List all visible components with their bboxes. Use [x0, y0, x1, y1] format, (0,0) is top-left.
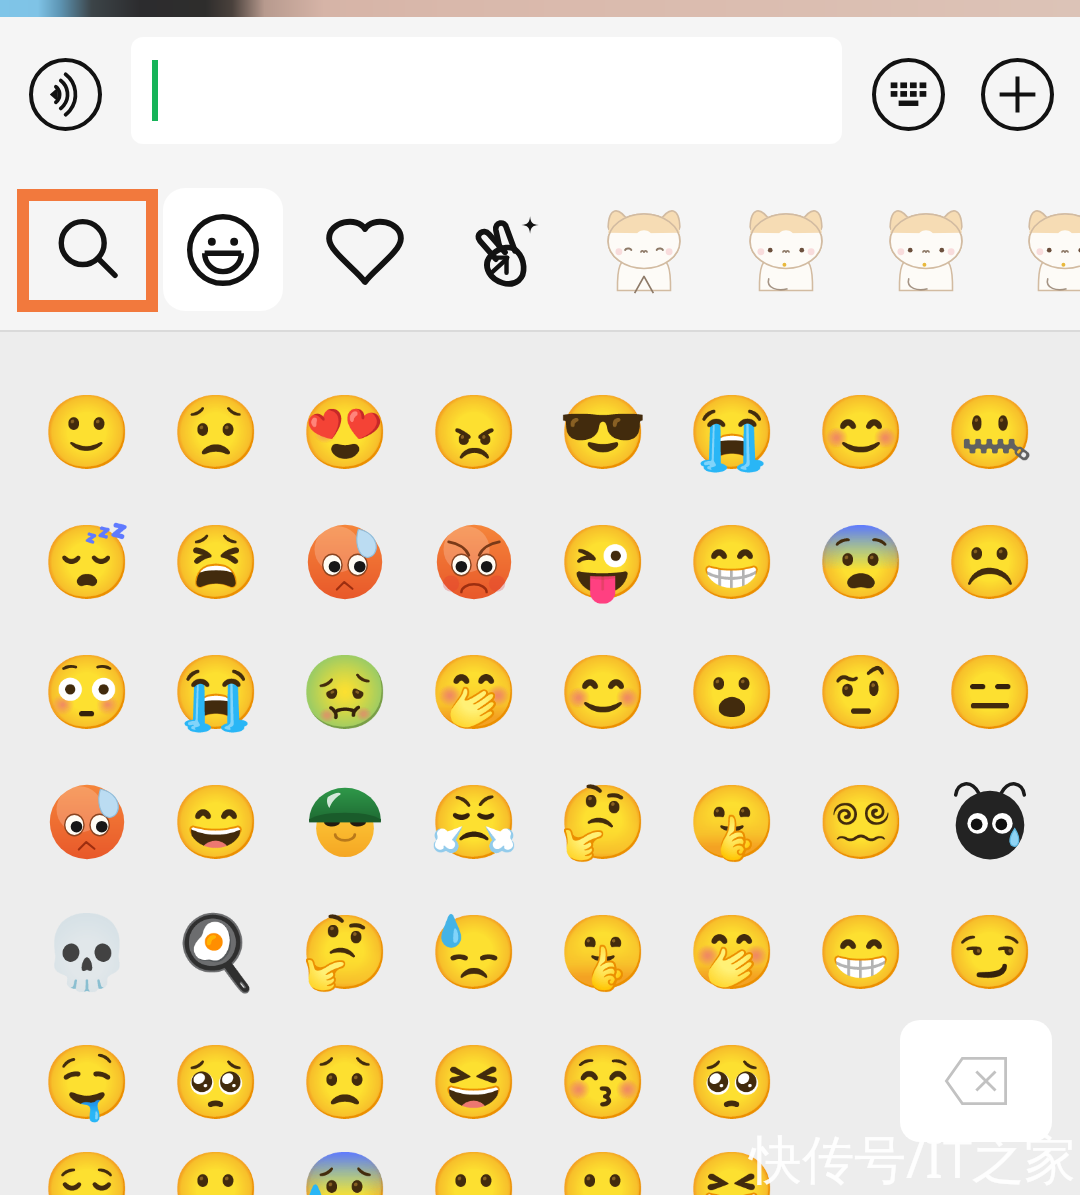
- button[interactable]: Emoji 45: [538, 1017, 667, 1147]
- staticText: 😜: [558, 520, 648, 605]
- staticText: 😏: [945, 910, 1035, 995]
- button[interactable]: Emoji 13: [538, 497, 667, 627]
- staticText: 🙂: [42, 390, 132, 475]
- button[interactable]: Emoji 27: [280, 757, 409, 887]
- button[interactable]: Sticker pack: [445, 188, 565, 311]
- staticText: 😳: [42, 650, 132, 735]
- button[interactable]: Emoji: [163, 188, 283, 311]
- button[interactable]: Emoji 9: [22, 497, 151, 627]
- button[interactable]: Emoji 34: [151, 887, 280, 1017]
- staticText: 🤔: [300, 910, 390, 995]
- staticText: 😑: [945, 650, 1035, 735]
- button[interactable]: Emoji 3: [280, 367, 409, 497]
- button[interactable]: Emoji 31: [796, 757, 925, 887]
- staticText: 😍: [300, 390, 390, 475]
- staticText: 😟: [300, 1040, 390, 1125]
- button[interactable]: Emoji 52: [409, 1147, 538, 1195]
- staticText: 🤢: [300, 650, 390, 735]
- button[interactable]: Emoji 35: [280, 887, 409, 1017]
- button[interactable]: Emoji 18: [151, 627, 280, 757]
- button[interactable]: Emoji 19: [280, 627, 409, 757]
- staticText: 🥺: [171, 1040, 261, 1125]
- button[interactable]: Emoji 2: [151, 367, 280, 497]
- button[interactable]: Emoji 39: [796, 887, 925, 1017]
- button[interactable]: Search stickers: [29, 201, 146, 300]
- button[interactable]: Emoji 1: [22, 367, 151, 497]
- button[interactable]: Emoji 38: [667, 887, 796, 1017]
- button[interactable]: Emoji 36: [409, 887, 538, 1017]
- button[interactable]: Emoji 53: [538, 1147, 667, 1195]
- button[interactable]: Emoji 11: [280, 497, 409, 627]
- staticText: 快传号/IT之家: [750, 1122, 1076, 1193]
- button[interactable]: Voice input: [24, 53, 106, 135]
- staticText: 😆: [429, 1040, 519, 1125]
- button[interactable]: Message input field: [131, 37, 842, 144]
- button[interactable]: Emoji 22: [667, 627, 796, 757]
- button[interactable]: Emoji 49: [22, 1147, 151, 1195]
- staticText: 😭: [171, 650, 261, 735]
- button[interactable]: Emoji 41: [22, 1017, 151, 1147]
- staticText: 😮: [687, 650, 777, 735]
- button[interactable]: Sticker pack 5: [1004, 188, 1080, 311]
- button[interactable]: Emoji 10: [151, 497, 280, 627]
- button[interactable]: Favorites: [305, 188, 425, 311]
- button[interactable]: Emoji 24: [925, 627, 1054, 757]
- button[interactable]: Emoji 54: [667, 1147, 796, 1195]
- staticText: 😵‍💫: [816, 780, 906, 865]
- staticText: 🙂: [171, 1147, 261, 1195]
- staticText: 😊: [558, 650, 648, 735]
- button[interactable]: Emoji 51: [280, 1147, 409, 1195]
- button[interactable]: Emoji 37: [538, 887, 667, 1017]
- button[interactable]: Emoji 32: [925, 757, 1054, 887]
- button[interactable]: Emoji 43: [280, 1017, 409, 1147]
- staticText: 😟: [171, 390, 261, 475]
- button[interactable]: Emoji 30: [667, 757, 796, 887]
- staticText: 😠: [429, 390, 519, 475]
- button[interactable]: Emoji 20: [409, 627, 538, 757]
- staticText: 🙂: [429, 1147, 519, 1195]
- button[interactable]: Emoji 16: [925, 497, 1054, 627]
- staticText: 🤤: [42, 1040, 132, 1125]
- staticText: 🤔: [558, 780, 648, 865]
- staticText: 🥺: [687, 1040, 777, 1125]
- button[interactable]: Emoji 46: [667, 1017, 796, 1147]
- button[interactable]: Emoji 12: [409, 497, 538, 627]
- button[interactable]: Emoji 4: [409, 367, 538, 497]
- staticText: 😁: [687, 520, 777, 605]
- staticText: 😄: [171, 780, 261, 865]
- button[interactable]: Sticker pack 3: [725, 188, 847, 311]
- staticText: 💀: [42, 910, 132, 995]
- button[interactable]: Emoji 15: [796, 497, 925, 627]
- staticText: 😁: [816, 910, 906, 995]
- button[interactable]: Keyboard: [867, 53, 949, 135]
- button[interactable]: Emoji 17: [22, 627, 151, 757]
- staticText: 😭: [687, 390, 777, 475]
- button[interactable]: Emoji 25: [22, 757, 151, 887]
- button[interactable]: Emoji 6: [667, 367, 796, 497]
- button[interactable]: Emoji 21: [538, 627, 667, 757]
- button[interactable]: Emoji 28: [409, 757, 538, 887]
- button[interactable]: Emoji 44: [409, 1017, 538, 1147]
- button[interactable]: Emoji 29: [538, 757, 667, 887]
- staticText: 😌: [42, 1147, 132, 1195]
- staticText: 😨: [816, 520, 906, 605]
- staticText: 😰: [300, 1147, 390, 1195]
- button[interactable]: Emoji 42: [151, 1017, 280, 1147]
- staticText: 🤫: [687, 780, 777, 865]
- button[interactable]: More: [976, 53, 1058, 135]
- button[interactable]: Emoji 7: [796, 367, 925, 497]
- staticText: 😎: [558, 390, 648, 475]
- button[interactable]: Emoji 5: [538, 367, 667, 497]
- staticText: 🙂: [558, 1147, 648, 1195]
- button[interactable]: Emoji 23: [796, 627, 925, 757]
- button[interactable]: Sticker pack 4: [865, 188, 987, 311]
- button[interactable]: Emoji 50: [151, 1147, 280, 1195]
- button[interactable]: Emoji 40: [925, 887, 1054, 1017]
- button[interactable]: Delete: [900, 1020, 1052, 1142]
- button[interactable]: Emoji 33: [22, 887, 151, 1017]
- button[interactable]: Sticker pack 2: [583, 188, 705, 311]
- button[interactable]: Emoji 26: [151, 757, 280, 887]
- staticText: 😴: [42, 520, 132, 605]
- button[interactable]: Emoji 14: [667, 497, 796, 627]
- button[interactable]: Emoji 8: [925, 367, 1054, 497]
